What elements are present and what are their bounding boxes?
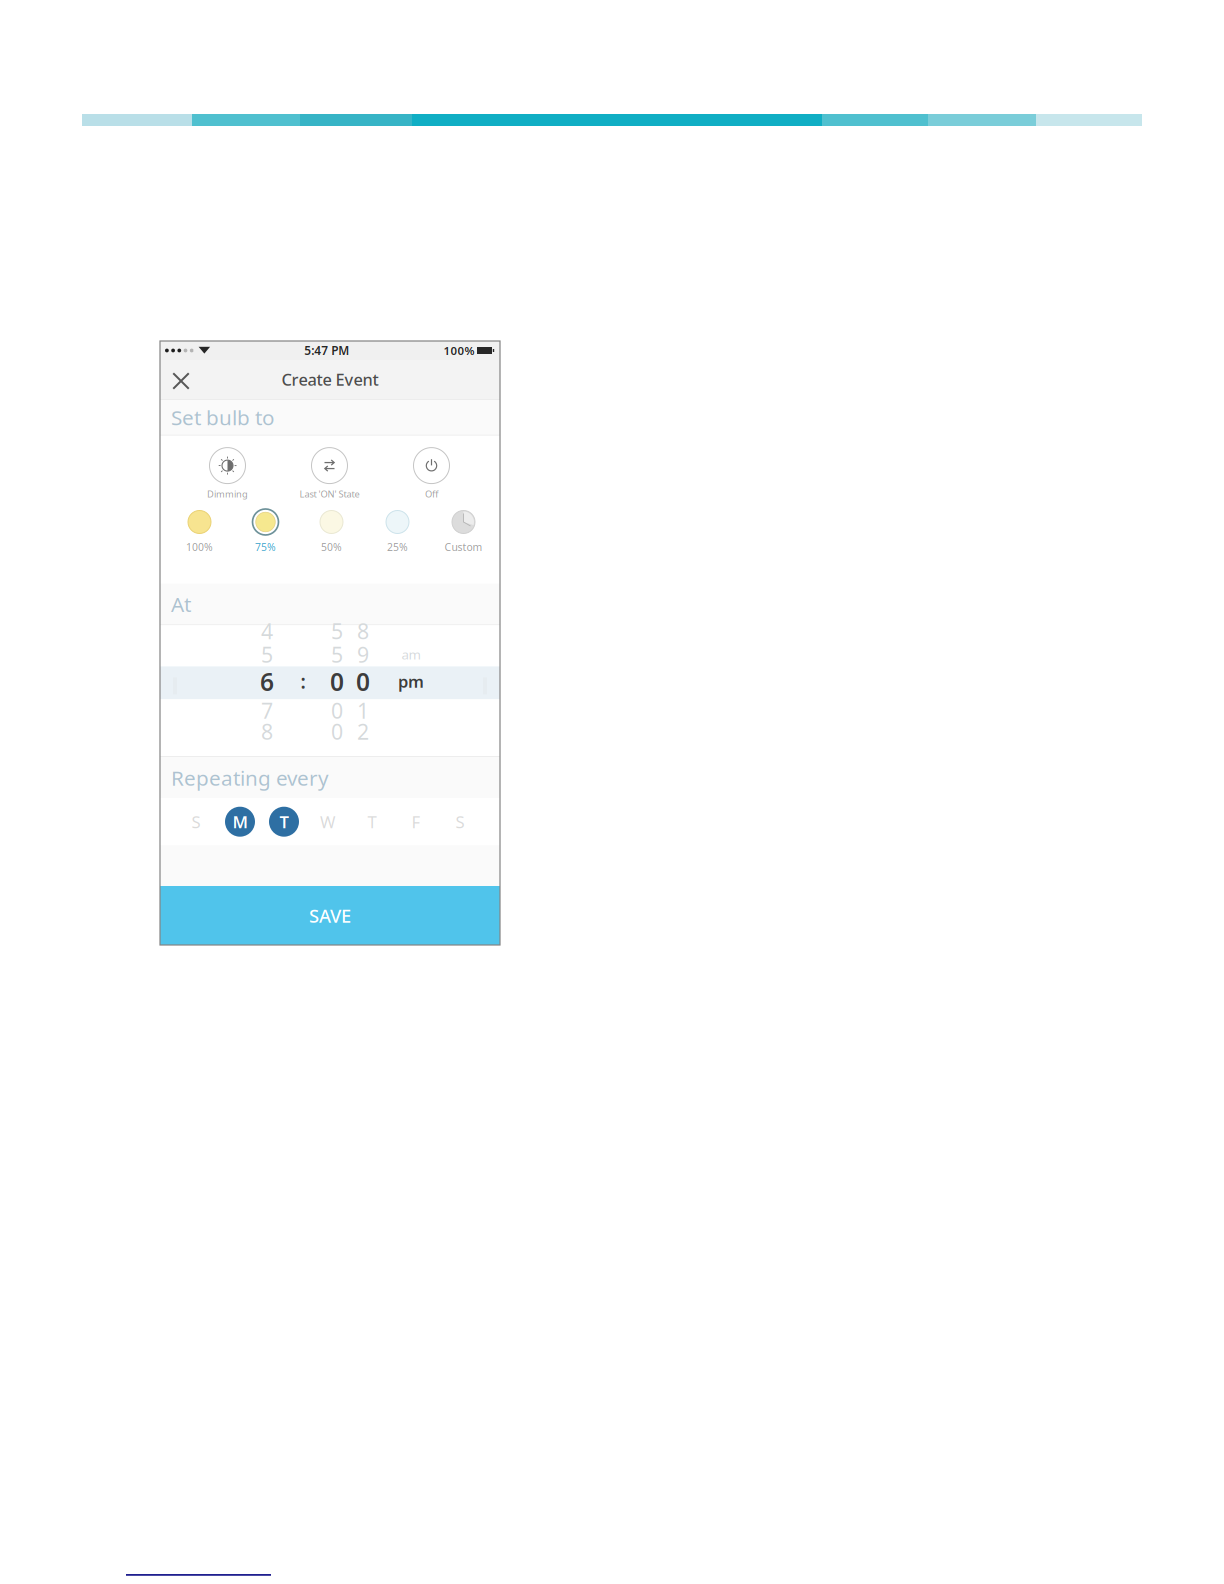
staticText: Repeating every — [171, 764, 329, 792]
button[interactable]: 25% — [364, 507, 430, 554]
staticText: pm — [398, 670, 424, 693]
staticText: 25% — [387, 540, 408, 554]
button[interactable]: S — [438, 798, 482, 845]
staticText: S — [191, 810, 200, 833]
button[interactable]: Close — [160, 360, 202, 399]
staticText: 4 — [261, 616, 273, 645]
staticText: 6 — [260, 665, 274, 698]
staticText: 100% — [443, 343, 474, 358]
staticText: 50% — [321, 540, 342, 554]
staticText: 0 — [331, 696, 343, 725]
button[interactable]: Hour — [252, 625, 282, 756]
button[interactable]: 75% — [232, 507, 298, 554]
button[interactable]: Off — [380, 448, 482, 500]
staticText: Set bulb to — [171, 403, 275, 431]
staticText: 7 — [261, 696, 273, 725]
button[interactable]: M — [218, 798, 262, 845]
staticText: T — [367, 810, 376, 833]
staticText: 0 — [331, 717, 343, 746]
staticText: T — [279, 810, 288, 833]
staticText: Off — [425, 488, 438, 500]
button[interactable]: F — [394, 798, 438, 845]
staticText: 75% — [255, 540, 276, 554]
staticText: 5 — [261, 640, 273, 669]
staticText: am — [401, 645, 420, 663]
button[interactable]: AM or PM — [376, 625, 446, 756]
staticText: 1 — [357, 696, 369, 725]
button[interactable]: Minute — [324, 625, 376, 756]
staticText: 5 — [331, 616, 343, 645]
staticText: 0 — [330, 665, 344, 698]
staticText: Dimming — [207, 488, 248, 500]
button[interactable]: Custom — [430, 507, 496, 554]
staticText: 5:47 PM — [304, 342, 349, 359]
button[interactable]: 100% — [166, 507, 232, 554]
staticText: 2 — [357, 717, 369, 746]
staticText: M — [232, 810, 247, 833]
button[interactable]: T — [262, 798, 306, 845]
staticText: 100% — [186, 540, 213, 554]
staticText: W — [320, 810, 336, 833]
button[interactable]: Last 'ON' State — [278, 448, 380, 500]
button[interactable]: W — [306, 798, 350, 845]
button[interactable]: SAVE — [160, 886, 500, 945]
staticText: 8 — [357, 616, 369, 645]
staticText: S — [455, 810, 464, 833]
button[interactable]: 50% — [298, 507, 364, 554]
button[interactable]: S — [174, 798, 218, 845]
staticText: SAVE — [309, 903, 351, 928]
staticText: 5 — [331, 640, 343, 669]
staticText: : — [300, 668, 305, 694]
staticText: At — [171, 590, 191, 618]
staticText: 9 — [357, 640, 369, 669]
staticText: Last 'ON' State — [299, 488, 359, 500]
staticText: Custom — [444, 540, 482, 554]
staticText: F — [411, 810, 420, 833]
button[interactable]: T — [350, 798, 394, 845]
staticText: 0 — [356, 665, 370, 698]
button[interactable]: Dimming — [176, 448, 278, 500]
staticText: Create Event — [281, 368, 378, 391]
staticText: 8 — [261, 717, 273, 746]
